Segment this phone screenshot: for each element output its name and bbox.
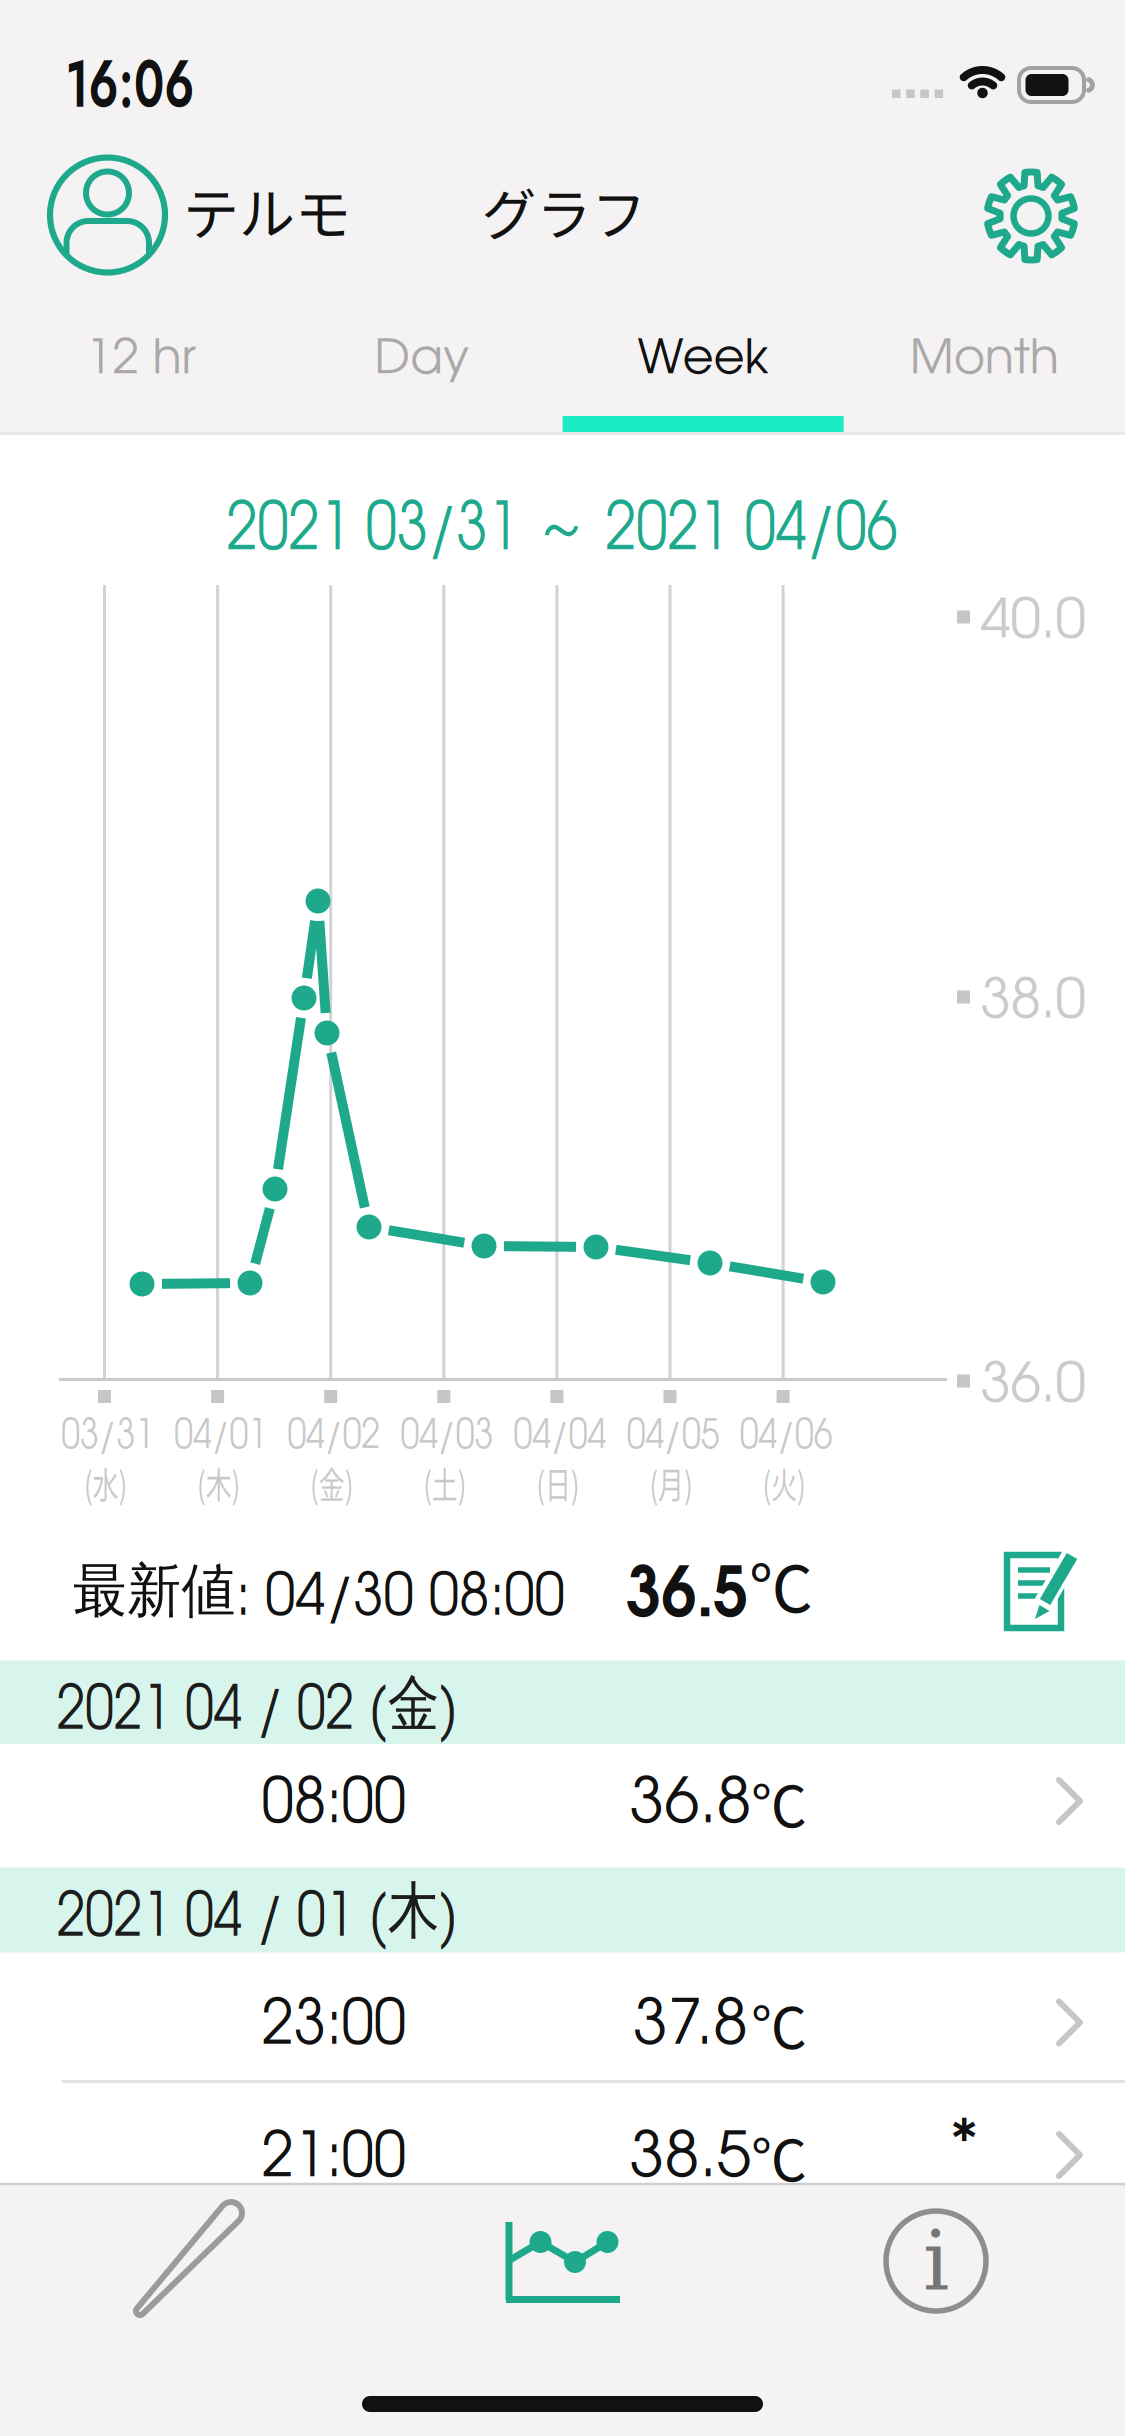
staticText: 最新値: 04/30 08:00 <box>51 1554 586 1628</box>
staticText: 40.0 <box>980 597 1085 648</box>
staticText: Day <box>374 338 469 382</box>
button[interactable]: Information <box>750 2185 1125 2385</box>
button[interactable]: 12 hr <box>0 305 281 415</box>
staticText: (月) <box>641 1457 701 1509</box>
staticText: 23:00 <box>255 1997 412 2056</box>
button[interactable]: Edit <box>985 1537 1095 1647</box>
staticText: 04/06 <box>732 1418 841 1456</box>
staticText: テルモ <box>183 169 351 251</box>
staticText: 12 hr <box>86 338 196 382</box>
button[interactable]: 21:00 <box>0 2098 1125 2212</box>
staticText: (木) <box>189 1457 249 1509</box>
staticText: 04/02 <box>279 1418 388 1456</box>
staticText: Month <box>910 338 1059 382</box>
staticText: 36.5 <box>619 1565 755 1629</box>
staticText: 04/01 <box>166 1418 275 1456</box>
staticText: 2021 04 / 02 (金) <box>18 1665 496 1743</box>
staticText: i <box>923 2213 949 2309</box>
staticText: 38.0 <box>980 977 1085 1028</box>
staticText: ℃ <box>751 1761 807 1843</box>
staticText: 2021 03/31 ～ 2021 04/06 <box>162 485 961 569</box>
staticText: 2021 04 / 01 (木) <box>18 1872 496 1950</box>
button[interactable]: 23:00 <box>0 1965 1125 2079</box>
staticText: (金) <box>302 1457 362 1509</box>
staticText: グラフ <box>481 171 646 251</box>
button[interactable]: Settings <box>976 161 1086 271</box>
button[interactable]: 08:00 <box>0 1744 1125 1858</box>
staticText: Week <box>638 338 769 382</box>
staticText: 08:00 <box>255 1776 412 1834</box>
staticText: * <box>951 2117 977 2174</box>
staticText: 38.5 <box>629 2130 751 2188</box>
staticText: 04/04 <box>505 1418 614 1456</box>
staticText: 37.8 <box>633 1997 748 2056</box>
button[interactable]: Day <box>281 305 562 415</box>
staticText: 03/31 <box>53 1418 162 1456</box>
staticText: ℃ <box>749 1538 813 1630</box>
button[interactable]: Record <box>0 2185 375 2385</box>
staticText: 36.8 <box>629 1776 751 1834</box>
button[interactable]: Month <box>844 305 1125 415</box>
staticText: 21:00 <box>255 2130 412 2188</box>
staticText: (火) <box>754 1457 814 1509</box>
staticText: 36.0 <box>980 1361 1085 1412</box>
staticText: ℃ <box>751 2115 807 2197</box>
staticText: ℃ <box>751 1983 807 2064</box>
button[interactable]: Week <box>563 305 844 415</box>
staticText: (土) <box>415 1457 475 1509</box>
staticText: 04/03 <box>392 1418 501 1456</box>
button[interactable]: Profile <box>45 153 169 277</box>
staticText: (水) <box>75 1457 135 1509</box>
staticText: 16:06 <box>40 37 219 131</box>
button[interactable]: Graph <box>375 2185 750 2385</box>
staticText: 04/05 <box>618 1418 727 1456</box>
staticText: (日) <box>528 1457 588 1509</box>
